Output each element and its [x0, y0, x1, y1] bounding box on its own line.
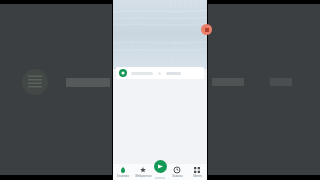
- button[interactable]: Notification: [201, 24, 212, 35]
- staticText: Главная: [117, 174, 129, 178]
- button[interactable]: Меню: [187, 164, 207, 180]
- staticText: Меню: [193, 174, 202, 178]
- button[interactable]: [116, 67, 204, 79]
- button[interactable]: Главная: [113, 164, 133, 180]
- button[interactable]: Заказы: [167, 164, 187, 180]
- staticText: Избранное: [135, 174, 152, 178]
- button[interactable]: Чат: [154, 160, 167, 173]
- button[interactable]: Избранное: [133, 164, 153, 180]
- staticText: Заказы: [172, 174, 183, 178]
